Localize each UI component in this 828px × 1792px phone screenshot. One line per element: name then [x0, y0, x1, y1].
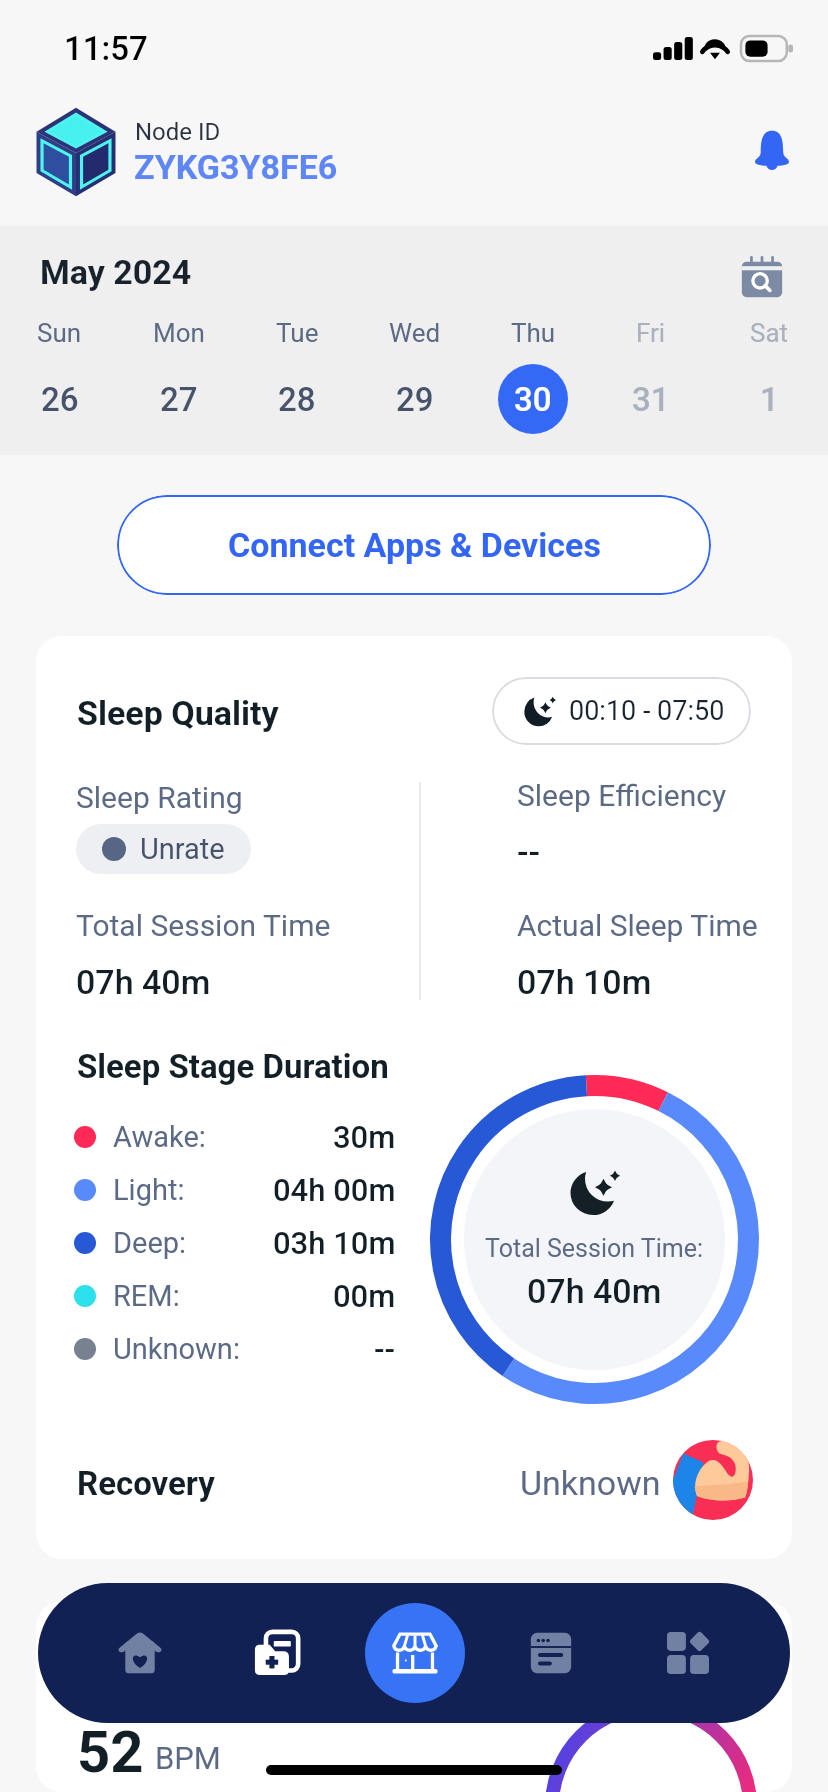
staticText: 30m: [333, 1119, 396, 1155]
button[interactable]: Home: [72, 1583, 208, 1723]
button[interactable]: Tue: [238, 318, 356, 434]
staticText: 07h 40m: [76, 962, 211, 1002]
staticText: 31: [632, 380, 670, 419]
staticText: --: [517, 832, 541, 872]
staticText: 07h 10m: [517, 962, 652, 1002]
staticText: 00m: [333, 1278, 396, 1314]
staticText: 30: [514, 380, 552, 419]
staticText: Sleep Efficiency: [517, 778, 727, 813]
button[interactable]: Fri: [592, 318, 710, 434]
staticText: Node ID: [135, 118, 221, 146]
staticText: 27: [160, 380, 198, 419]
staticText: Sleep Rating: [76, 780, 243, 815]
staticText: Unknown:: [113, 1332, 240, 1366]
staticText: Unrate: [140, 832, 225, 866]
staticText: Light:: [113, 1173, 185, 1207]
staticText: Total Session Time:: [485, 1234, 704, 1263]
staticText: Sun: [37, 318, 82, 348]
staticText: Thu: [511, 318, 556, 348]
staticText: Unknown: [520, 1463, 661, 1503]
staticText: 29: [396, 380, 434, 419]
button[interactable]: News: [483, 1583, 619, 1723]
button[interactable]: Apps: [620, 1583, 756, 1723]
staticText: May 2024: [40, 252, 192, 292]
staticText: 00:10 - 07:50: [569, 695, 725, 727]
staticText: Total Session Time: [76, 908, 331, 943]
staticText: Mon: [153, 318, 205, 348]
staticText: REM:: [113, 1279, 180, 1313]
staticText: Sleep Stage Duration: [77, 1047, 389, 1086]
button[interactable]: Sat: [710, 318, 828, 434]
button[interactable]: Wed: [356, 318, 474, 434]
staticText: Sleep Quality: [77, 693, 279, 733]
staticText: Actual Sleep Time: [517, 908, 758, 943]
staticText: BPM: [155, 1740, 221, 1776]
button[interactable]: Connect Apps & Devices: [117, 495, 711, 595]
staticText: Tue: [276, 318, 319, 348]
staticText: 07h 40m: [527, 1271, 662, 1311]
staticText: 1: [760, 380, 779, 419]
staticText: Deep:: [113, 1226, 187, 1260]
button[interactable]: 00:10 - 07:50: [492, 677, 751, 745]
staticText: 26: [41, 380, 79, 419]
staticText: 04h 00m: [273, 1172, 396, 1208]
staticText: 28: [278, 380, 316, 419]
button[interactable]: Sun: [0, 318, 119, 434]
staticText: 03h 10m: [273, 1225, 396, 1261]
staticText: Recovery: [77, 1464, 215, 1503]
staticText: 52: [77, 1718, 144, 1786]
staticText: --: [374, 1331, 396, 1367]
button[interactable]: Search date: [733, 248, 791, 306]
staticText: Fri: [636, 318, 666, 348]
staticText: Sat: [750, 318, 789, 348]
staticText: Awake:: [113, 1120, 206, 1154]
button[interactable]: Store: [365, 1603, 465, 1703]
button[interactable]: Health records: [209, 1583, 345, 1723]
button[interactable]: Mon: [119, 318, 238, 434]
staticText: ZYKG3Y8FE6: [134, 147, 338, 187]
staticText: Connect Apps & Devices: [228, 525, 601, 565]
button[interactable]: Notifications: [744, 122, 800, 178]
staticText: 11:57: [64, 29, 148, 68]
staticText: Wed: [389, 318, 441, 348]
button[interactable]: Thu: [474, 318, 592, 434]
